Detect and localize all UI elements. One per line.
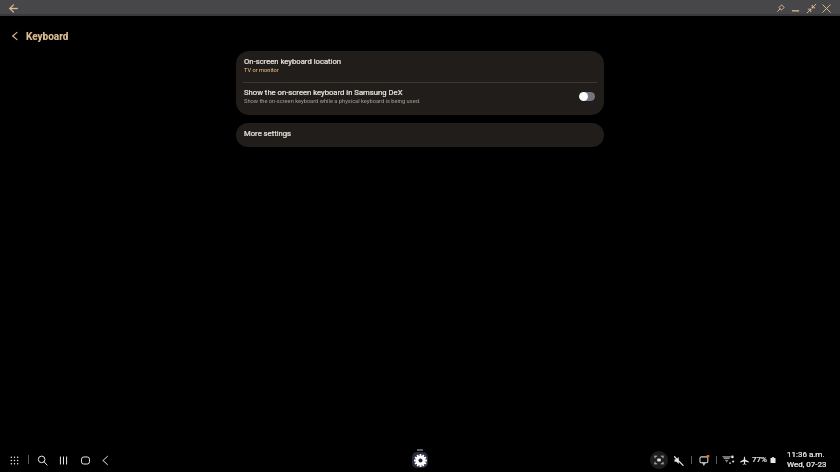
button[interactable]: On-screen keyboard location [236,51,604,82]
button[interactable]: Restore down [803,0,819,16]
staticText: 77% [752,455,767,464]
button[interactable]: Pin window [772,0,788,16]
button[interactable]: Show the on-screen keyboard in Samsung D… [236,83,604,115]
button[interactable]: Settings [412,452,428,468]
button[interactable]: Sound muted [672,453,685,467]
button[interactable]: Apps [4,450,24,470]
staticText: Show the on-screen keyboard while a phys… [244,98,421,105]
other: Battery 77 percent [770,455,776,465]
button[interactable]: Back [5,0,21,16]
button[interactable]: Back [95,450,115,470]
staticText: More settings [244,129,292,138]
button[interactable]: Home [75,450,95,470]
button[interactable]: Show on-screen keyboard toggle, off [578,90,596,103]
button[interactable]: Wi-Fi [722,453,735,466]
staticText: TV or monitor [244,67,279,74]
button[interactable]: Recent apps [53,450,73,470]
staticText: On-screen keyboard location [244,57,342,66]
button[interactable]: More settings [236,123,604,147]
button[interactable]: Airplane mode [739,454,750,466]
button[interactable]: Search [32,450,52,470]
staticText: Show the on-screen keyboard in Samsung D… [244,88,403,97]
button[interactable]: Navigate up [8,29,22,43]
button[interactable]: Close [818,0,834,16]
button[interactable]: Minimize [787,0,803,16]
button[interactable]: Screen capture [650,451,668,469]
staticText: 11:36 a.m. [787,450,825,459]
staticText: Wed, 07-23 [787,460,827,469]
button[interactable]: Notifications [698,453,712,467]
staticText: Keyboard [26,31,69,43]
